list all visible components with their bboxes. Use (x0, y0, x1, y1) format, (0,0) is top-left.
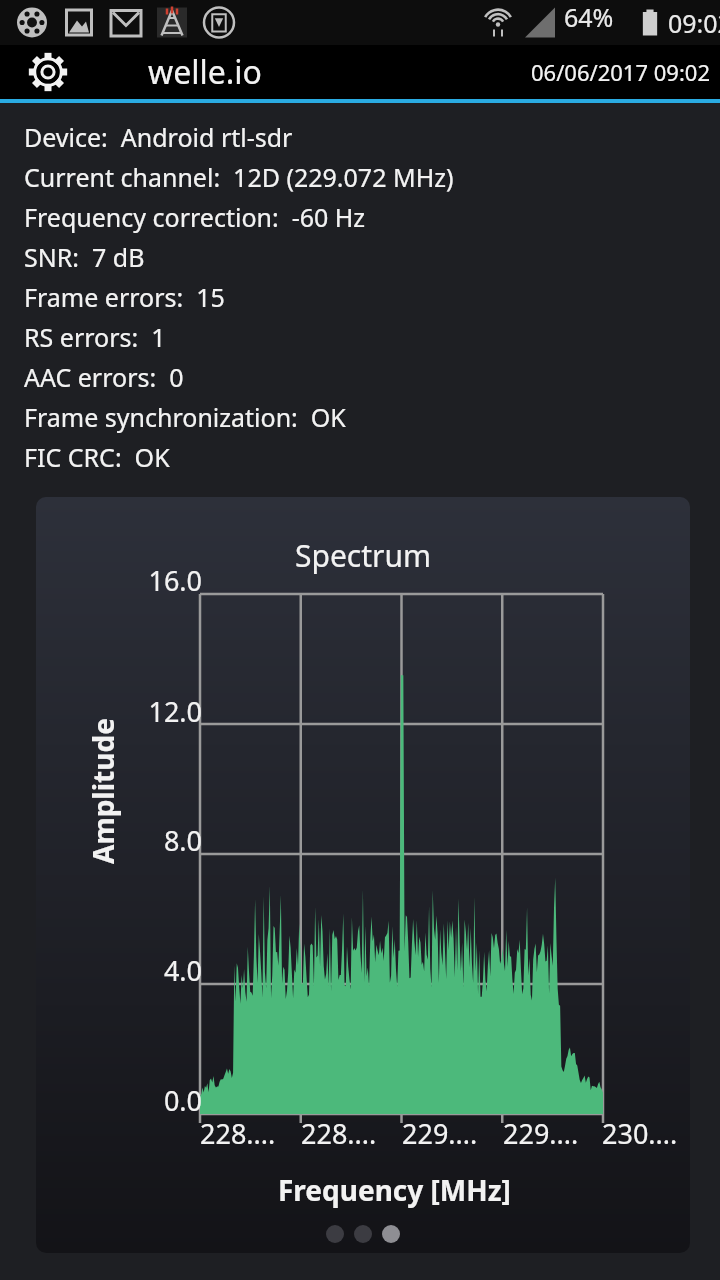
staticText: 228.... (200, 1115, 276, 1152)
staticText: 0.0 (163, 1082, 202, 1119)
staticText: Frame errors: 15 (24, 280, 225, 314)
button[interactable]: FIC CRC: OK (24, 437, 720, 477)
staticText: SNR: 7 dB (24, 240, 145, 274)
staticText: Frame synchronization: OK (24, 400, 346, 434)
staticText: 229.... (402, 1115, 478, 1152)
staticText: Current channel: 12D (229.072 MHz) (24, 160, 454, 194)
button[interactable]: RS errors: 1 (24, 317, 720, 357)
staticText: Frequency correction: -60 Hz (24, 200, 366, 234)
staticText: 230.... (602, 1115, 678, 1152)
button[interactable]: SNR: 7 dB (24, 237, 720, 277)
button[interactable]: AAC errors: 0 (24, 357, 720, 397)
staticText: Frequency [MHz] (278, 1171, 511, 1209)
button[interactable]: Frame synchronization: OK (24, 397, 720, 437)
staticText: Device: Android rtl-sdr (24, 120, 293, 154)
button[interactable]: Spectrum (36, 497, 690, 1253)
staticText: Amplitude (84, 718, 122, 864)
staticText: welle.io (148, 50, 262, 94)
staticText: FIC CRC: OK (24, 440, 170, 474)
button[interactable] (382, 1225, 400, 1243)
staticText: 09:02 (668, 6, 720, 40)
button[interactable]: Frame errors: 15 (24, 277, 720, 317)
button[interactable] (354, 1225, 372, 1243)
button[interactable]: Settings (16, 45, 80, 99)
staticText: 228.... (301, 1115, 377, 1152)
staticText: 12.0 (148, 693, 202, 730)
staticText: 8.0 (163, 822, 202, 859)
button[interactable] (326, 1225, 344, 1243)
staticText: RS errors: 1 (24, 320, 166, 354)
button[interactable]: Frequency correction: -60 Hz (24, 197, 720, 237)
staticText: 229.... (503, 1115, 579, 1152)
staticText: 16.0 (148, 562, 202, 599)
staticText: Spectrum (295, 535, 432, 576)
button[interactable]: Device: Android rtl-sdr (24, 117, 720, 157)
staticText: 64% (564, 0, 636, 45)
button[interactable]: Current channel: 12D (229.072 MHz) (24, 157, 720, 197)
staticText: 06/06/2017 09:02 (531, 57, 710, 87)
staticText: AAC errors: 0 (24, 360, 184, 394)
staticText: 4.0 (163, 952, 202, 989)
